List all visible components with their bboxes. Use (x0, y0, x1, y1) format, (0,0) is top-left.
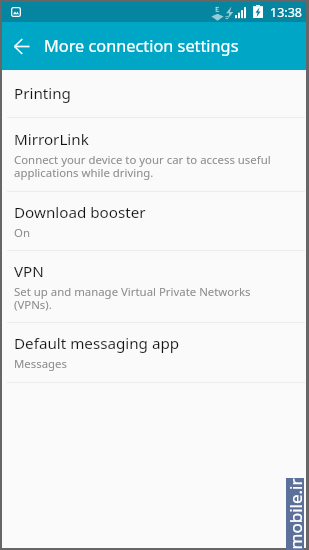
button[interactable]: MirrorLink (2, 118, 306, 191)
staticText: Set up and manage Virtual Private Networ… (14, 284, 274, 313)
staticText: Printing (14, 83, 71, 104)
staticText: Connect your device to your car to acces… (14, 152, 274, 181)
staticText: Default messaging app (14, 333, 180, 354)
button[interactable]: Back (2, 22, 41, 70)
staticText: More connection settings (44, 35, 239, 57)
staticText: MirrorLink (14, 129, 89, 150)
button[interactable]: VPN (2, 251, 306, 322)
staticText: 13:38 (270, 4, 302, 21)
staticText: On (14, 225, 30, 241)
staticText: VPN (14, 261, 44, 282)
button[interactable]: Printing (2, 70, 306, 117)
button[interactable]: Download booster (2, 192, 306, 250)
button[interactable]: Default messaging app (2, 323, 306, 382)
staticText: Download booster (14, 202, 146, 223)
staticText: Messages (14, 356, 67, 372)
